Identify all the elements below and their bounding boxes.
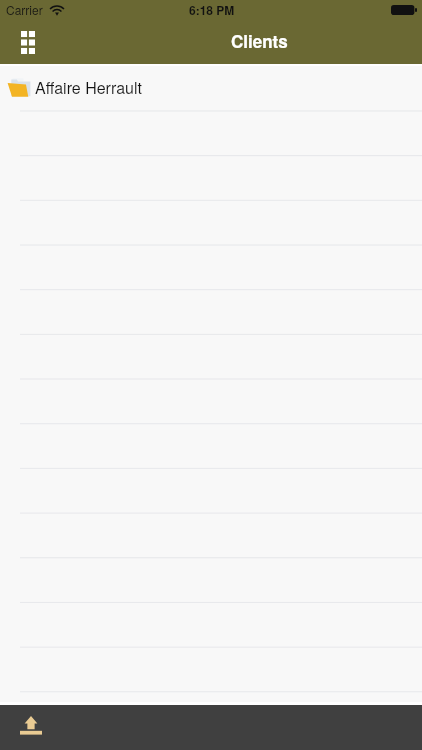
button[interactable]: Menu (14, 25, 42, 59)
staticText: Affaire Herrault (35, 76, 142, 99)
button[interactable]: Affaire Herrault (0, 64, 422, 110)
button[interactable] (0, 695, 422, 740)
button[interactable]: Upload (9, 704, 53, 747)
staticText: 6:18 PM (189, 1, 235, 18)
staticText: Clients (231, 29, 288, 53)
staticText: Carrier (6, 1, 43, 18)
